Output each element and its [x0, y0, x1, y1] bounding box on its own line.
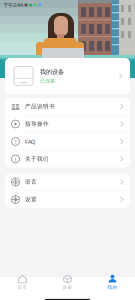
staticText: 指导操作	[25, 120, 49, 128]
button[interactable]: i	[5, 150, 130, 167]
staticText: 关于我们	[25, 155, 49, 163]
button[interactable]: ?	[5, 133, 130, 150]
button[interactable]: 语言	[5, 173, 130, 190]
button[interactable]: 产品说明书	[5, 98, 130, 115]
staticText: FAQ	[25, 138, 35, 145]
button[interactable]: 设置	[5, 191, 130, 208]
staticText: 已连接	[40, 78, 55, 84]
staticText: 首页	[17, 284, 27, 290]
staticText: 设备	[62, 284, 72, 290]
button[interactable]: 设备	[45, 274, 90, 290]
button[interactable]: 首页	[0, 274, 45, 290]
button[interactable]: 指导操作	[5, 115, 130, 132]
staticText: 产品说明书	[25, 103, 55, 110]
staticText: 下午2:44	[3, 1, 23, 9]
staticText: 我的	[107, 284, 117, 290]
button[interactable]: 我的设备	[5, 58, 130, 94]
staticText: i	[14, 155, 16, 163]
staticText: 语言	[25, 178, 37, 186]
staticText: 设置	[25, 196, 37, 203]
button[interactable]: 我的	[90, 274, 135, 290]
staticText: 我的设备	[40, 68, 64, 76]
staticText: ?	[14, 137, 17, 145]
